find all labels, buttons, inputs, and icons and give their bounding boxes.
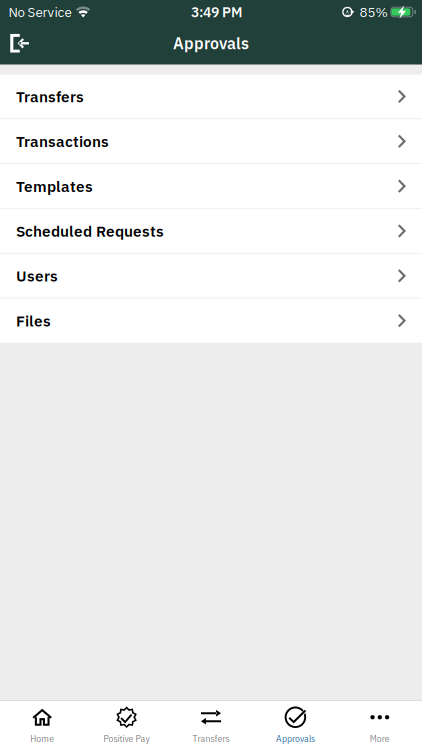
staticText: Templates: [16, 176, 93, 196]
button[interactable]: Users: [0, 254, 422, 298]
button[interactable]: Approvals: [253, 701, 338, 750]
staticText: 85%: [359, 3, 387, 21]
button[interactable]: Transactions: [0, 119, 422, 163]
staticText: Transfers: [16, 86, 84, 106]
staticText: 3:49 PM: [191, 3, 242, 21]
button[interactable]: Transfers: [169, 701, 253, 750]
staticText: Scheduled Requests: [16, 221, 164, 241]
staticText: Home: [30, 732, 54, 745]
staticText: Files: [16, 311, 51, 331]
button[interactable]: Files: [0, 299, 422, 343]
button[interactable]: Sign out: [0, 23, 39, 63]
staticText: Approvals: [173, 33, 249, 54]
button[interactable]: More: [338, 701, 422, 750]
staticText: Transfers: [192, 732, 229, 745]
button[interactable]: Positive Pay: [84, 701, 169, 750]
button[interactable]: Templates: [0, 164, 422, 208]
staticText: More: [370, 732, 390, 745]
staticText: Approvals: [276, 732, 315, 745]
staticText: Users: [16, 266, 58, 286]
staticText: Transactions: [16, 131, 109, 151]
button[interactable]: Scheduled Requests: [0, 209, 422, 253]
staticText: Positive Pay: [104, 732, 150, 745]
button[interactable]: Transfers: [0, 74, 422, 118]
staticText: No Service: [8, 3, 71, 21]
button[interactable]: Home: [0, 701, 84, 750]
